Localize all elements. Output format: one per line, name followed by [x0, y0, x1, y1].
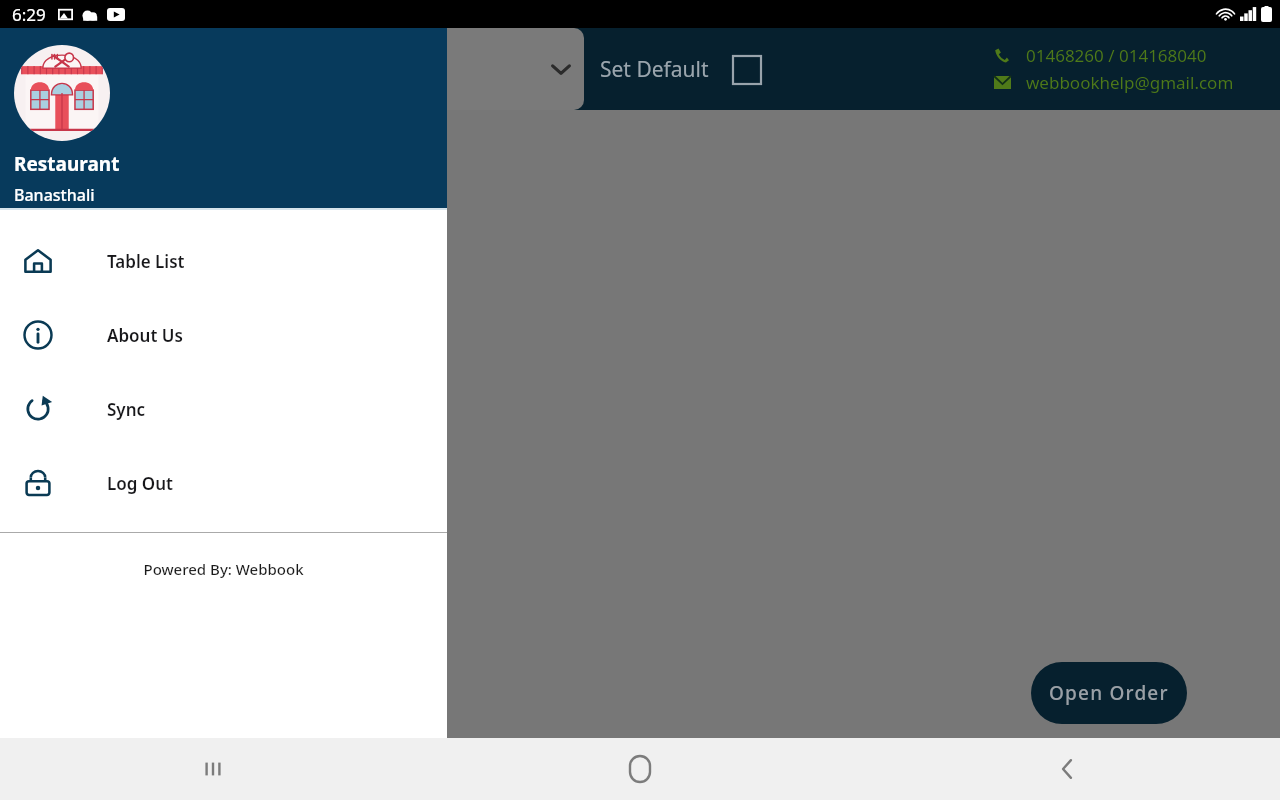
button[interactable]: Table List — [0, 224, 447, 298]
button[interactable]: Home — [426, 738, 853, 800]
button[interactable]: Sync — [0, 372, 447, 446]
staticText: About Us — [107, 324, 183, 347]
staticText: 01468260 / 014168040 — [1026, 44, 1207, 67]
button[interactable]: About Us — [0, 298, 447, 372]
button[interactable]: Back — [853, 738, 1280, 800]
staticText: Table List — [107, 250, 185, 273]
staticText: Set Default — [600, 55, 709, 84]
staticText: Restaurant — [14, 151, 120, 177]
button[interactable]: Select table dropdown — [447, 28, 584, 110]
staticText: webbookhelp@gmail.com — [1026, 71, 1234, 94]
button[interactable]: Recent apps — [0, 738, 426, 800]
staticText: Sync — [107, 398, 146, 421]
staticText: Log Out — [107, 472, 173, 495]
button[interactable]: Set Default checkbox — [733, 56, 761, 84]
button[interactable]: Open Order — [1031, 662, 1187, 724]
staticText: 6:29 — [12, 3, 46, 26]
staticText: Powered By: Webbook — [0, 559, 447, 579]
staticText: Banasthali — [14, 184, 95, 206]
staticText: Open Order — [1049, 680, 1169, 706]
button[interactable]: Log Out — [0, 446, 447, 520]
